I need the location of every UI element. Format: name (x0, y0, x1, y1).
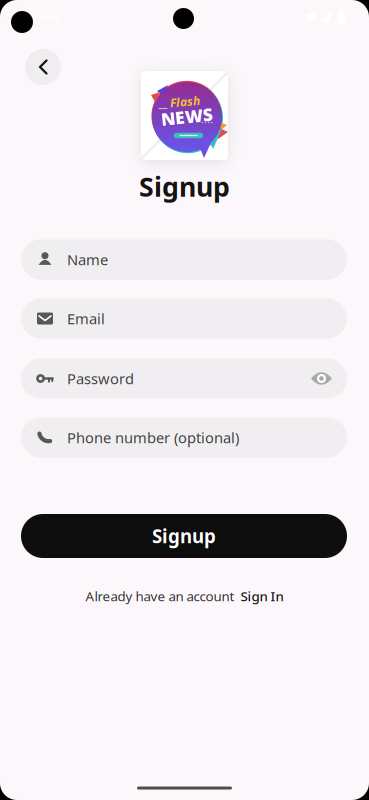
staticText: Signup (139, 169, 230, 204)
staticText: Flash (170, 93, 200, 109)
button[interactable]: Password (21, 358, 347, 398)
staticText: Name (67, 250, 108, 269)
button[interactable]: Sign In (240, 587, 283, 605)
staticText: Phone number (optional) (67, 428, 239, 447)
button[interactable]: Email (21, 298, 347, 338)
button[interactable] (25, 49, 61, 85)
button[interactable]: Signup (21, 514, 347, 558)
staticText: Email (67, 309, 105, 328)
button[interactable]: Name (21, 239, 347, 279)
button[interactable] (311, 372, 332, 384)
staticText: Sign In (240, 587, 283, 605)
button[interactable]: Phone number (optional) (21, 417, 347, 457)
staticText: Signup (152, 524, 216, 548)
staticText: NEWS (161, 105, 213, 128)
staticText: Already have an account (85, 587, 234, 605)
staticText: Password (67, 369, 134, 388)
